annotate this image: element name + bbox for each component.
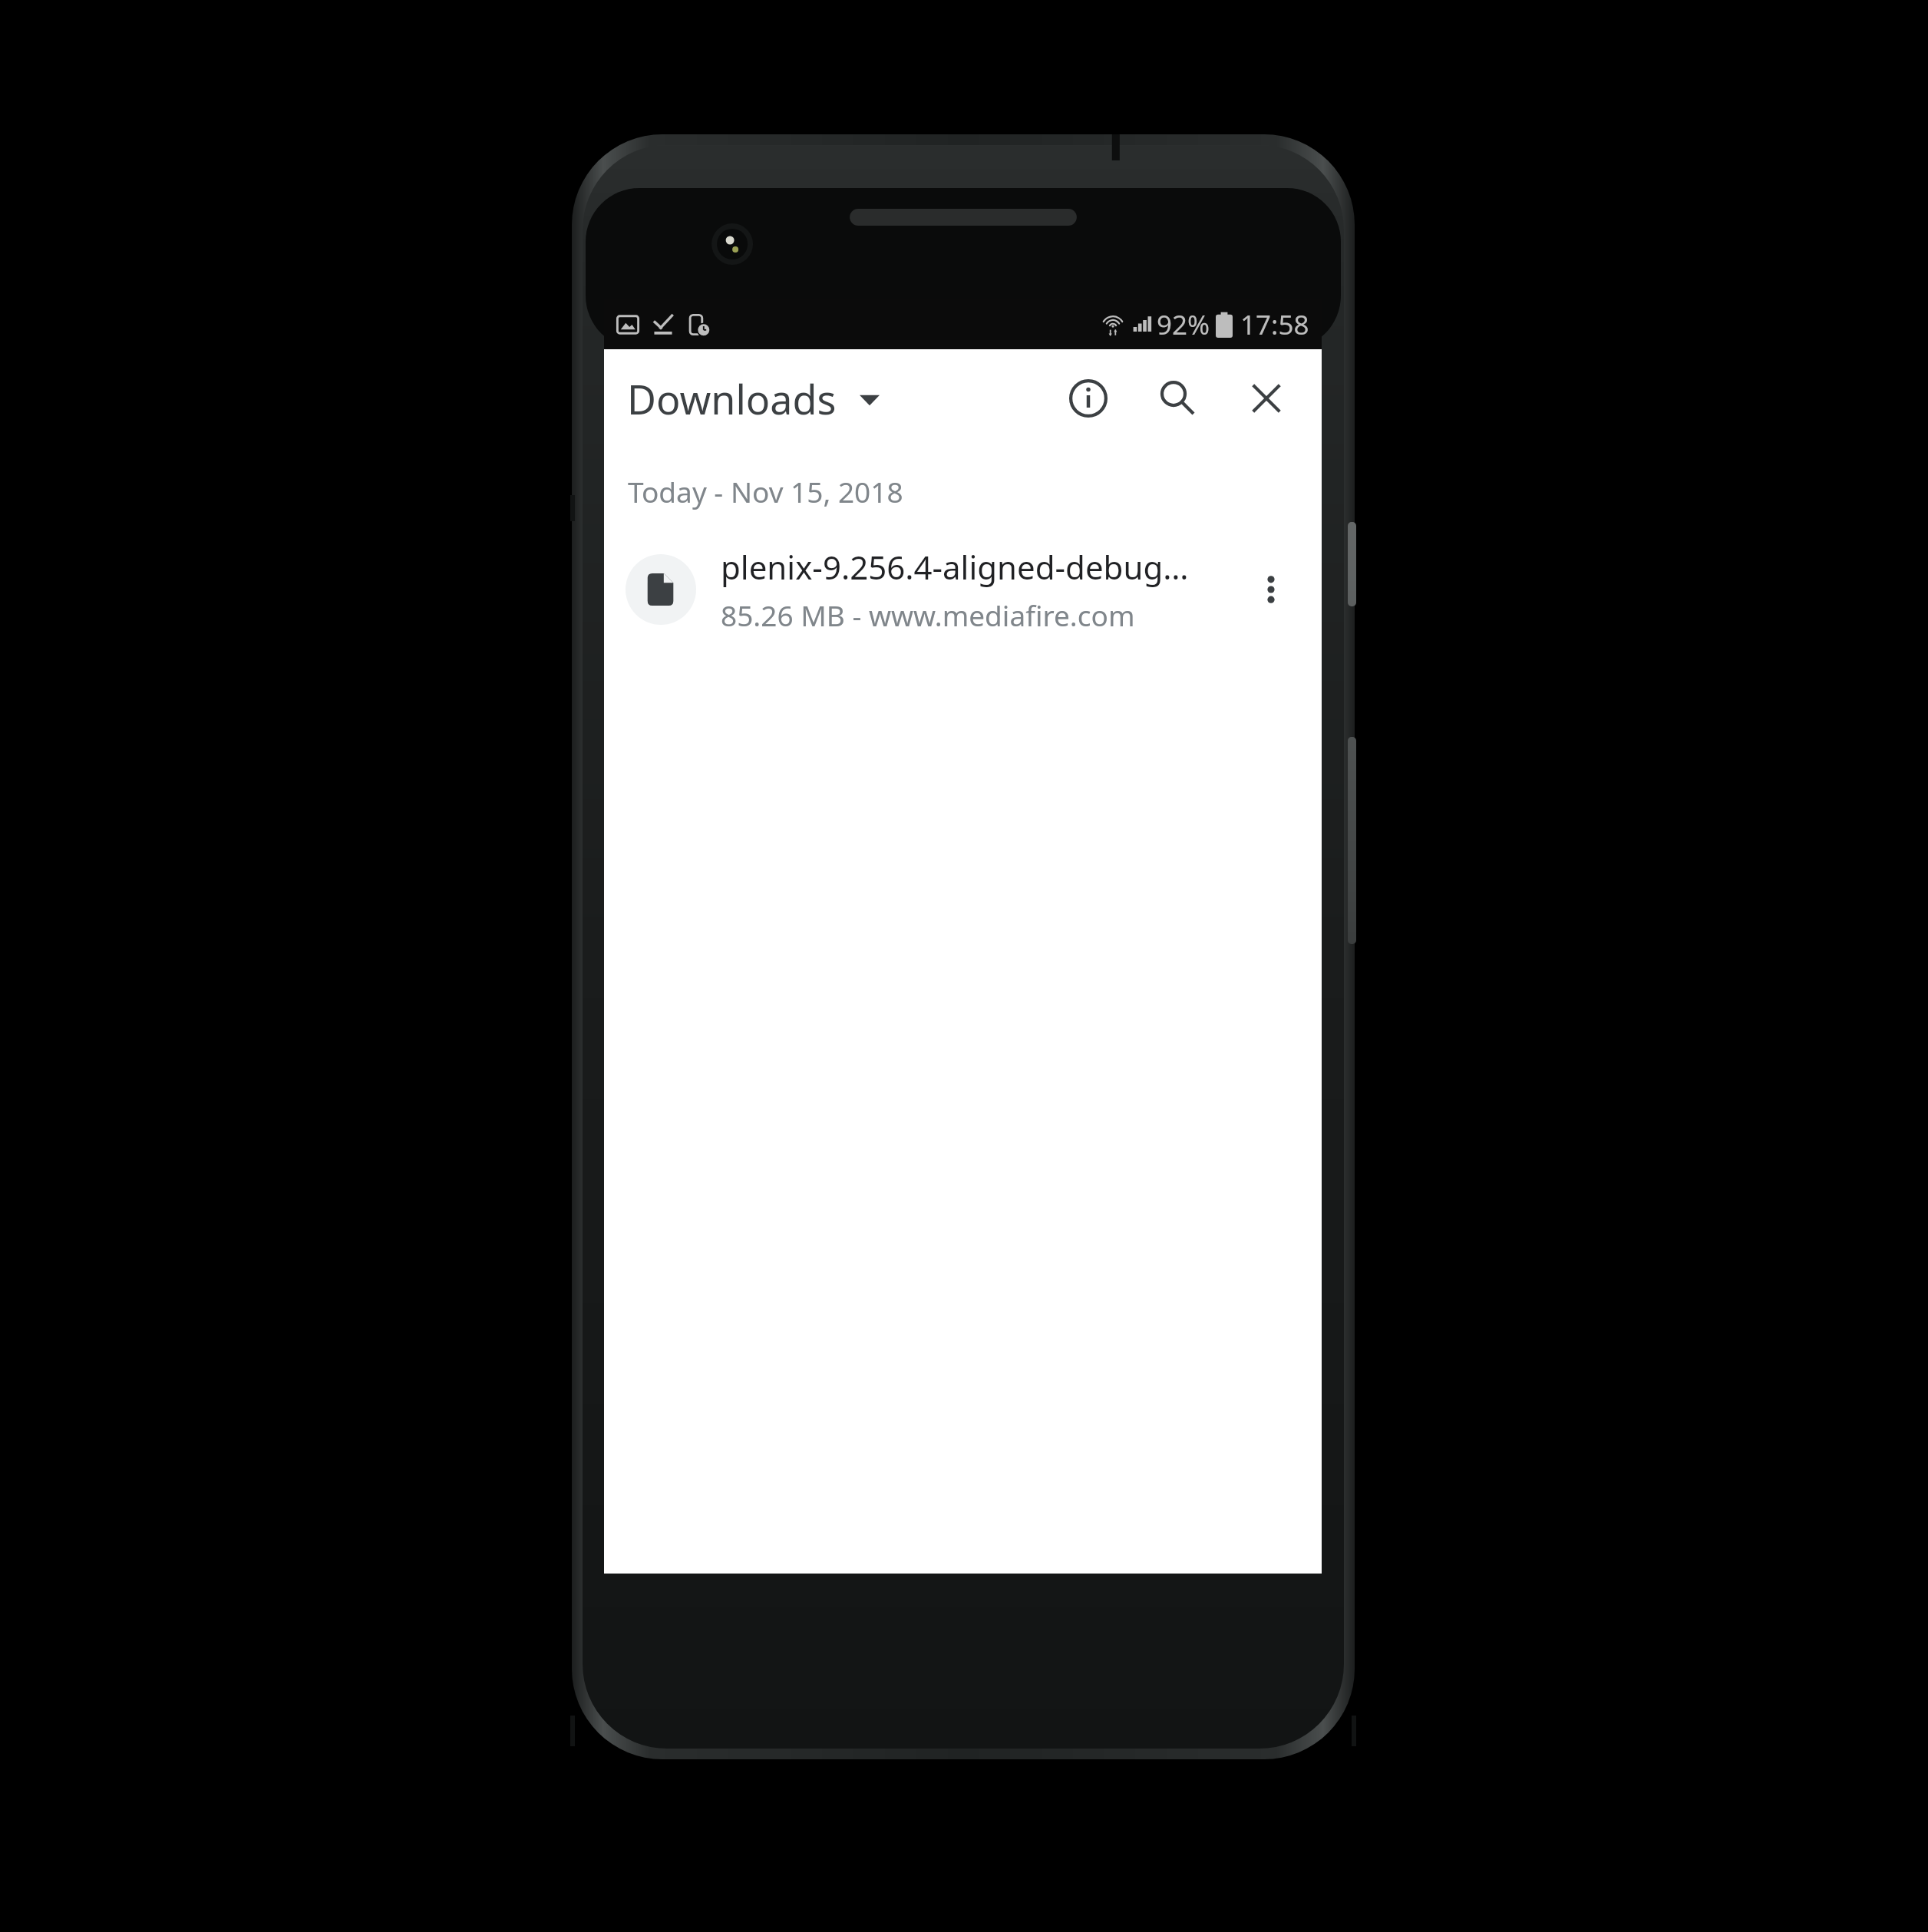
staticText: 17:58 [1240,306,1309,343]
staticText: Downloads [627,372,837,426]
button[interactable]: Search [1142,363,1213,434]
staticText: plenix-9.256.4-aligned-debug… [721,545,1189,589]
button[interactable]: plenix-9.256.4-aligned-debug… [604,540,1322,639]
staticText: 92% [1157,306,1210,343]
button[interactable]: Details [1053,363,1124,434]
button[interactable]: More options [1237,556,1305,623]
button[interactable]: Close [1231,363,1302,434]
staticText: Today - Nov 15, 2018 [628,472,903,510]
staticText: 85.26 MB - www.mediafire.com [721,596,1135,634]
button[interactable]: Downloads [604,367,890,431]
